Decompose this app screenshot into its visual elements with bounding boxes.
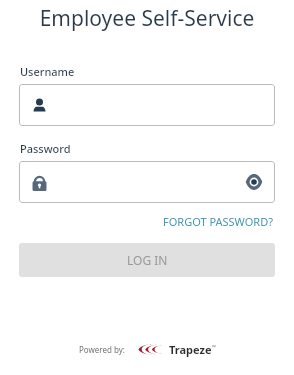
staticText: Password [20,141,71,156]
button[interactable]: FORGOT PASSWORD? [161,212,275,231]
button[interactable]: LOG IN [19,243,275,277]
button[interactable]: Username [19,84,275,126]
button[interactable]: Password [19,161,275,203]
staticText: LOG IN [127,252,168,268]
staticText: ™ [212,344,216,351]
staticText: Username [20,64,75,79]
staticText: Employee Self-Service [0,4,294,33]
button[interactable]: Show password [237,165,271,199]
staticText: FORGOT PASSWORD? [163,214,273,229]
staticText: Powered by: [79,344,125,355]
other: Username [32,98,47,113]
staticText: Trapeze [169,342,212,357]
other: Password [31,174,48,191]
